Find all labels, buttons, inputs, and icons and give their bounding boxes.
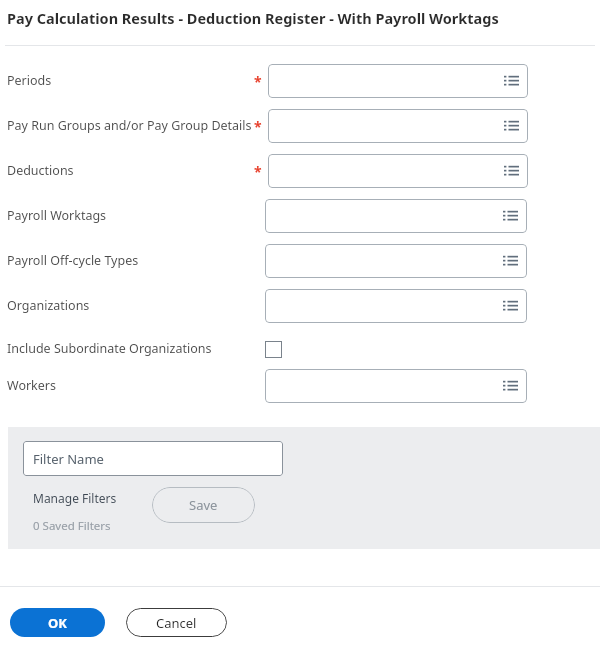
staticText: * — [254, 117, 262, 136]
staticText: Pay Run Groups and/or Pay Group Details — [7, 117, 252, 134]
button[interactable]: Periods — [268, 64, 528, 98]
button[interactable]: Manage Filters — [33, 490, 117, 506]
staticText: Workers — [7, 377, 56, 394]
button[interactable]: Organizations — [265, 289, 527, 323]
staticText: OK — [48, 614, 67, 632]
staticText: Include Subordinate Organizations — [7, 340, 212, 357]
staticText: Filter Name — [33, 450, 104, 468]
button[interactable]: Deductions — [268, 154, 528, 188]
staticText: Organizations — [7, 297, 90, 314]
staticText: Save — [189, 496, 218, 514]
staticText: * — [254, 162, 262, 181]
staticText: Deductions — [7, 162, 74, 179]
staticText: Periods — [7, 72, 52, 89]
staticText: 0 Saved Filters — [33, 518, 111, 534]
button[interactable]: Pay Run Groups and/or Pay Group Details — [268, 109, 528, 143]
staticText: Payroll Worktags — [7, 207, 107, 224]
staticText: * — [254, 72, 262, 91]
button[interactable]: Save — [152, 487, 255, 523]
button[interactable]: Payroll Off-cycle Types — [265, 244, 527, 278]
staticText: Pay Calculation Results - Deduction Regi… — [7, 8, 499, 28]
staticText: Cancel — [156, 614, 197, 632]
staticText: Payroll Off-cycle Types — [7, 252, 139, 269]
button[interactable]: Payroll Worktags — [265, 199, 527, 233]
button[interactable]: OK — [10, 608, 105, 637]
button[interactable]: Include Subordinate Organizations — [265, 341, 282, 358]
button[interactable]: Workers — [265, 369, 527, 403]
button[interactable]: Filter Name — [23, 441, 283, 476]
staticText: Manage Filters — [33, 490, 117, 506]
button[interactable]: Cancel — [126, 608, 227, 637]
